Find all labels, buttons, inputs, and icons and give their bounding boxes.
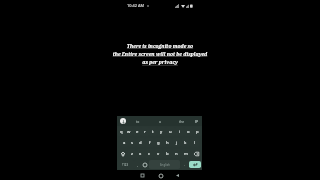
button[interactable]: m: [181, 149, 190, 158]
button[interactable]: t: [149, 127, 157, 136]
staticText: a: [159, 119, 161, 124]
staticText: y: [160, 129, 163, 135]
button[interactable]: f: [145, 138, 154, 147]
staticText: u: [169, 129, 172, 135]
button[interactable]: the: [171, 116, 193, 126]
staticText: f: [149, 140, 151, 146]
button[interactable]: Home: [156, 171, 165, 180]
button[interactable]: .: [181, 160, 188, 169]
staticText: q: [120, 129, 123, 135]
button[interactable]: h: [163, 138, 172, 147]
button[interactable]: English: [149, 160, 180, 169]
button[interactable]: p: [193, 127, 202, 136]
staticText: x: [139, 151, 142, 157]
staticText: z: [131, 151, 133, 157]
button[interactable]: a: [120, 138, 128, 147]
button[interactable]: Back: [173, 171, 182, 180]
button[interactable]: to: [126, 116, 149, 126]
staticText: m: [184, 151, 188, 157]
button[interactable]: Emoji: [141, 160, 148, 169]
button[interactable]: b: [163, 149, 172, 158]
button[interactable]: u: [166, 127, 175, 136]
button[interactable]: ?123: [117, 160, 134, 169]
button[interactable]: i: [175, 127, 184, 136]
staticText: a: [123, 140, 126, 146]
staticText: n: [175, 151, 178, 157]
button[interactable]: k: [181, 138, 190, 147]
staticText: k: [184, 140, 187, 146]
staticText: l: [194, 140, 196, 146]
button[interactable]: r: [141, 127, 149, 136]
staticText: e: [136, 129, 139, 135]
staticText: to: [136, 119, 140, 124]
button[interactable]: e: [133, 127, 141, 136]
staticText: 10:42 AM: [127, 3, 145, 8]
staticText: g: [157, 140, 160, 146]
staticText: d: [139, 140, 142, 146]
staticText: c: [148, 151, 151, 157]
button[interactable]: s: [128, 138, 136, 147]
button[interactable]: o: [184, 127, 193, 136]
button[interactable]: Backspace: [190, 149, 202, 158]
staticText: b: [166, 151, 169, 157]
button[interactable]: l: [190, 138, 199, 147]
button[interactable]: Expand suggestions: [193, 118, 199, 124]
button[interactable]: v: [154, 149, 163, 158]
staticText: h: [166, 140, 169, 146]
staticText: i: [179, 129, 181, 135]
button[interactable]: Shift: [117, 149, 128, 158]
staticText: v: [157, 151, 160, 157]
staticText: p: [196, 129, 199, 135]
staticText: s: [131, 140, 134, 146]
staticText: There is incognito mode so the Entire sc…: [0, 43, 320, 66]
staticText: r: [144, 129, 146, 135]
staticText: o: [187, 129, 190, 135]
button[interactable]: g: [154, 138, 163, 147]
button[interactable]: Recents: [138, 171, 147, 180]
button[interactable]: j: [172, 138, 181, 147]
button[interactable]: Enter: [189, 161, 201, 168]
staticText: ,: [137, 162, 138, 167]
button[interactable]: Gboard menu: [120, 118, 126, 124]
button[interactable]: n: [172, 149, 181, 158]
button[interactable]: y: [157, 127, 166, 136]
staticText: t: [152, 129, 154, 135]
button[interactable]: ,: [134, 160, 141, 169]
button[interactable]: c: [145, 149, 154, 158]
staticText: j: [176, 140, 178, 146]
button[interactable]: a: [149, 116, 171, 126]
staticText: ?123: [122, 163, 129, 167]
button[interactable]: z: [128, 149, 136, 158]
button[interactable]: w: [125, 127, 133, 136]
staticText: .: [184, 162, 185, 167]
button[interactable]: d: [136, 138, 145, 147]
button[interactable]: x: [136, 149, 145, 158]
staticText: English: [160, 163, 170, 167]
staticText: w: [127, 129, 131, 135]
button[interactable]: q: [117, 127, 125, 136]
staticText: the: [179, 119, 185, 124]
